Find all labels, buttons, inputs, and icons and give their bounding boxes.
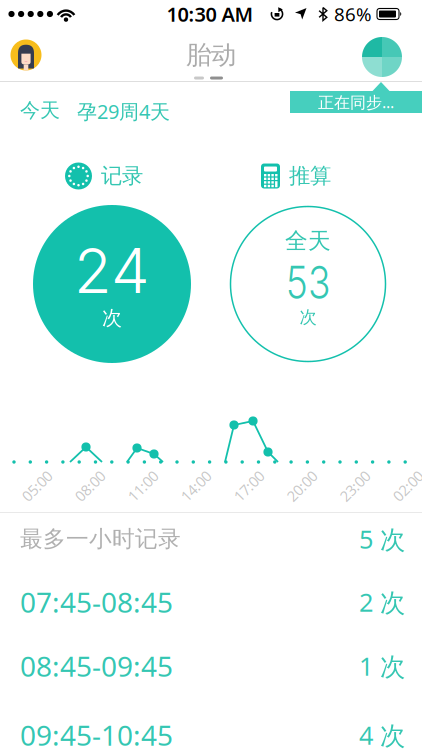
staticText: 1 次 <box>359 649 405 683</box>
button[interactable]: 记录 <box>65 162 143 189</box>
staticText: 23:00 <box>337 476 373 496</box>
staticText: 次 <box>299 307 316 328</box>
button[interactable] <box>10 39 41 70</box>
staticText: 10:30 AM <box>166 1 253 27</box>
staticText: 02:00 <box>390 476 422 496</box>
staticText: 07:45-08:45 <box>20 583 173 621</box>
staticText: 53 <box>281 255 335 310</box>
staticText: 86% <box>334 2 372 26</box>
staticText: 推算 <box>289 163 331 189</box>
staticText: 20:00 <box>284 476 320 496</box>
staticText: 记录 <box>101 163 143 189</box>
staticText: 2 次 <box>359 585 405 619</box>
button[interactable]: 推算 <box>261 163 331 189</box>
staticText: 今天 <box>20 98 60 123</box>
staticText: 全天 <box>285 227 331 255</box>
staticText: 08:00 <box>72 476 108 496</box>
staticText: 24 <box>74 234 150 308</box>
staticText: 4 次 <box>359 718 405 750</box>
staticText: 17:00 <box>231 476 267 496</box>
staticText: 11:00 <box>125 476 161 496</box>
button[interactable] <box>362 37 402 77</box>
staticText: 胎动 <box>186 39 236 70</box>
staticText: 08:45-09:45 <box>20 647 173 685</box>
staticText: 09:45-10:45 <box>20 716 173 750</box>
staticText: 14:00 <box>178 476 214 496</box>
button[interactable]: 24 <box>33 205 191 363</box>
staticText: 正在同步... <box>318 91 394 113</box>
staticText: 次 <box>102 306 122 330</box>
button[interactable]: 全天 <box>230 206 385 361</box>
staticText: 最多一小时记录 <box>20 525 181 553</box>
staticText: 孕29周4天 <box>77 98 170 125</box>
staticText: 05:00 <box>19 476 55 496</box>
staticText: 5 次 <box>359 522 405 556</box>
